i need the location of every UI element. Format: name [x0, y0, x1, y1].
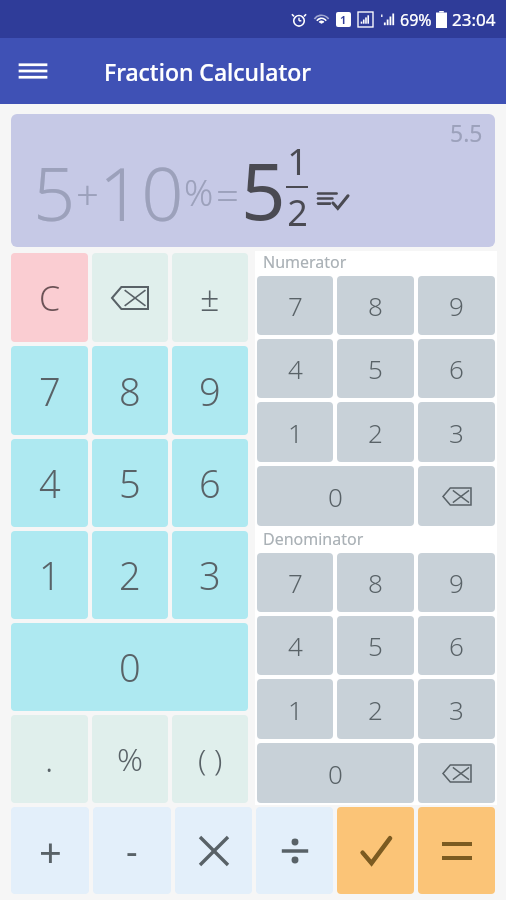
- staticText: 1: [288, 692, 303, 727]
- staticText: .: [45, 736, 54, 782]
- staticText: 2: [368, 692, 383, 727]
- staticText: 2: [119, 549, 141, 601]
- staticText: 1: [340, 12, 347, 27]
- staticText: 9: [199, 365, 221, 417]
- staticText: 5: [33, 142, 76, 243]
- button[interactable]: 4: [11, 439, 88, 527]
- button[interactable]: 9: [418, 553, 495, 612]
- button[interactable]: 6: [172, 439, 248, 527]
- staticText: 0: [328, 756, 343, 791]
- staticText: 5: [368, 628, 383, 663]
- button[interactable]: ±: [172, 253, 248, 342]
- button[interactable]: 8: [92, 346, 168, 435]
- staticText: 3: [199, 549, 221, 601]
- button[interactable]: Backspace Numerator: [418, 466, 495, 526]
- button[interactable]: Confirm: [337, 807, 414, 894]
- staticText: 0: [119, 641, 141, 693]
- staticText: 6: [199, 457, 221, 509]
- button[interactable]: 4: [257, 616, 333, 675]
- button[interactable]: C: [11, 253, 88, 342]
- button[interactable]: 1: [257, 679, 333, 739]
- button[interactable]: 2: [337, 402, 414, 462]
- button[interactable]: 7: [11, 346, 88, 435]
- staticText: ( ): [198, 739, 223, 780]
- button[interactable]: ( ): [172, 715, 248, 803]
- button[interactable]: 1: [11, 531, 88, 619]
- button[interactable]: 3: [172, 531, 248, 619]
- button[interactable]: 5: [92, 439, 168, 527]
- staticText: Denominator: [263, 528, 364, 550]
- staticText: 4: [288, 628, 303, 663]
- button[interactable]: 2: [92, 531, 168, 619]
- button[interactable]: -: [93, 807, 171, 894]
- staticText: =: [216, 167, 239, 221]
- button[interactable]: 0: [11, 623, 248, 711]
- staticText: 1: [288, 415, 303, 450]
- button[interactable]: 7: [257, 553, 333, 612]
- button[interactable]: 7: [257, 276, 333, 335]
- staticText: Numerator: [263, 251, 347, 273]
- staticText: 4: [288, 351, 303, 386]
- staticText: 4: [39, 457, 61, 509]
- button[interactable]: Multiply: [175, 807, 252, 894]
- staticText: 6: [449, 628, 464, 663]
- button[interactable]: 9: [418, 276, 495, 335]
- staticText: Fraction Calculator: [104, 56, 311, 87]
- staticText: 3: [449, 692, 464, 727]
- button[interactable]: 5: [337, 616, 414, 675]
- button[interactable]: 6: [418, 339, 495, 398]
- button[interactable]: +: [11, 807, 89, 894]
- staticText: 7: [288, 288, 303, 323]
- button[interactable]: 0: [257, 466, 414, 526]
- staticText: +: [76, 167, 99, 221]
- button[interactable]: 0: [257, 743, 414, 803]
- staticText: 69%: [400, 9, 432, 31]
- staticText: 1: [39, 549, 61, 601]
- staticText: 2: [287, 188, 308, 237]
- button[interactable]: Show calculation history: [316, 183, 350, 217]
- button[interactable]: 3: [418, 679, 495, 739]
- staticText: 9: [449, 288, 464, 323]
- staticText: 8: [368, 288, 383, 323]
- button[interactable]: Open navigation menu: [10, 48, 56, 94]
- staticText: 5.5: [450, 117, 483, 148]
- staticText: 6: [449, 351, 464, 386]
- staticText: 3: [449, 415, 464, 450]
- button[interactable]: Backspace: [92, 253, 168, 342]
- staticText: %: [184, 168, 214, 217]
- button[interactable]: 9: [172, 346, 248, 435]
- staticText: 9: [449, 565, 464, 600]
- staticText: 5: [241, 137, 286, 243]
- staticText: 10: [99, 142, 184, 243]
- button[interactable]: .: [11, 715, 88, 803]
- button[interactable]: 1: [257, 402, 333, 462]
- staticText: ±: [200, 275, 220, 321]
- button[interactable]: 5: [337, 339, 414, 398]
- staticText: 2: [368, 415, 383, 450]
- button[interactable]: 8: [337, 553, 414, 612]
- button[interactable]: Divide: [256, 807, 333, 894]
- staticText: %: [117, 737, 143, 781]
- button[interactable]: Equals: [418, 807, 495, 894]
- staticText: -: [126, 826, 138, 875]
- staticText: 0: [328, 479, 343, 514]
- button[interactable]: %: [92, 715, 168, 803]
- staticText: 5: [119, 457, 141, 509]
- staticText: +: [39, 824, 62, 878]
- button[interactable]: 3: [418, 402, 495, 462]
- staticText: 5: [368, 351, 383, 386]
- button[interactable]: 6: [418, 616, 495, 675]
- button[interactable]: Backspace Denominator: [418, 743, 495, 803]
- staticText: 8: [368, 565, 383, 600]
- button[interactable]: 2: [337, 679, 414, 739]
- button[interactable]: 8: [337, 276, 414, 335]
- button[interactable]: 4: [257, 339, 333, 398]
- staticText: C: [39, 275, 61, 321]
- staticText: 8: [119, 365, 141, 417]
- staticText: 23:04: [452, 8, 496, 31]
- button[interactable]: 5.5: [11, 114, 495, 247]
- staticText: 7: [39, 365, 61, 417]
- staticText: 7: [288, 565, 303, 600]
- staticText: 1: [287, 137, 308, 186]
